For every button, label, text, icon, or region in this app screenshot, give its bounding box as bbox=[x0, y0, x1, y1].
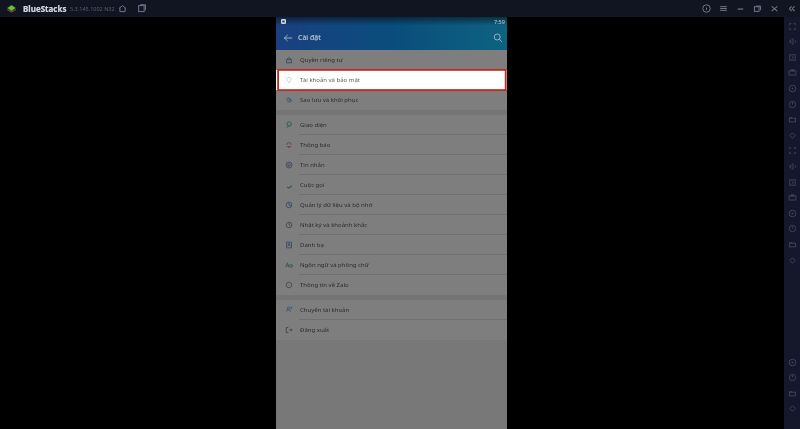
button[interactable]: Volume bbox=[784, 34, 800, 49]
button[interactable]: Menu bbox=[717, 2, 730, 15]
staticText: BlueStacks bbox=[23, 3, 67, 14]
button[interactable]: Location bbox=[784, 143, 800, 158]
button[interactable]: Chuyển tài khoản bbox=[276, 300, 507, 320]
button[interactable]: Screenshot bbox=[784, 65, 800, 80]
button[interactable]: Ngôn ngữ và phông chữ bbox=[276, 255, 507, 275]
staticText: Giao diện bbox=[300, 121, 327, 129]
button[interactable]: Thông báo bbox=[276, 135, 507, 155]
button[interactable]: Macro bbox=[784, 190, 800, 205]
button[interactable]: Minimize bbox=[734, 2, 747, 15]
staticText: Thông tin về Zalo bbox=[300, 281, 349, 289]
button[interactable]: Hint bbox=[784, 206, 800, 221]
button[interactable]: Quản lý dữ liệu và bộ nhớ bbox=[276, 195, 507, 215]
staticText: Tin nhắn bbox=[300, 161, 325, 169]
button[interactable]: Thông tin về Zalo bbox=[276, 275, 507, 295]
button[interactable]: Sao lưu và khôi phục bbox=[276, 90, 507, 110]
button[interactable]: Home bbox=[116, 2, 129, 15]
staticText: Thông báo bbox=[300, 141, 331, 149]
button[interactable]: Rotate bbox=[784, 97, 800, 112]
button[interactable]: History bbox=[784, 237, 800, 252]
button[interactable]: Multi instance manager bbox=[135, 2, 148, 15]
button[interactable]: Settings bbox=[784, 355, 800, 370]
staticText: 5.3.145.1002 N32 bbox=[70, 5, 115, 12]
button[interactable]: Recents bbox=[784, 401, 800, 416]
button[interactable]: Record bbox=[784, 81, 800, 96]
staticText: Tài khoản và bảo mật bbox=[300, 76, 360, 84]
staticText: Quản lý dữ liệu và bộ nhớ bbox=[300, 201, 373, 209]
button[interactable]: Info bbox=[784, 253, 800, 268]
staticText: Nhật ký và khoảnh khắc bbox=[300, 221, 368, 229]
button[interactable]: Copy bbox=[784, 175, 800, 190]
button[interactable]: Tin nhắn bbox=[276, 155, 507, 175]
button[interactable]: Collapse sidebar bbox=[785, 2, 798, 15]
button[interactable]: Close bbox=[768, 2, 781, 15]
button[interactable]: Danh bạ bbox=[276, 235, 507, 255]
button[interactable]: Search bbox=[488, 28, 507, 47]
staticText: Cuộc gọi bbox=[300, 181, 325, 189]
button[interactable]: Restore bbox=[751, 2, 764, 15]
staticText: Cài đặt bbox=[298, 33, 321, 43]
button[interactable]: Folder bbox=[784, 159, 800, 174]
button[interactable]: Layers bbox=[784, 221, 800, 236]
staticText: Sao lưu và khôi phục bbox=[300, 96, 359, 104]
staticText: Danh bạ bbox=[300, 241, 324, 249]
staticText: Chuyển tài khoản bbox=[300, 306, 350, 314]
button[interactable]: Home bbox=[784, 386, 800, 401]
button[interactable]: Giao diện bbox=[276, 115, 507, 135]
button[interactable]: Cuộc gọi bbox=[276, 175, 507, 195]
button[interactable]: Đăng xuất bbox=[276, 320, 507, 340]
button[interactable]: Tài khoản và bảo mật bbox=[276, 70, 507, 90]
button[interactable]: Keyboard bbox=[784, 128, 800, 143]
button[interactable]: Back bbox=[278, 28, 297, 47]
button[interactable]: Shake bbox=[784, 112, 800, 127]
staticText: Đăng xuất bbox=[300, 326, 330, 334]
staticText: Quyền riêng tư bbox=[300, 56, 343, 64]
button[interactable]: Fullscreen bbox=[784, 19, 800, 34]
staticText: 7:59 bbox=[494, 18, 505, 25]
staticText: Ngôn ngữ và phông chữ bbox=[300, 261, 369, 269]
button[interactable]: Quyền riêng tư bbox=[276, 50, 507, 70]
button[interactable]: Media bbox=[784, 50, 800, 65]
button[interactable]: Help bbox=[700, 2, 713, 15]
button[interactable]: Nhật ký và khoảnh khắc bbox=[276, 215, 507, 235]
button[interactable]: Back bbox=[784, 370, 800, 385]
